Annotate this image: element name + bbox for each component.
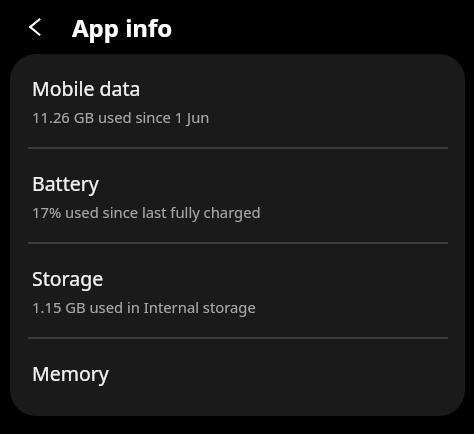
staticText: Battery xyxy=(32,170,99,197)
staticText: Storage xyxy=(32,265,104,292)
staticText: 1.15 GB used in Internal storage xyxy=(32,297,256,317)
button[interactable]: Memory xyxy=(10,339,465,416)
staticText: Memory xyxy=(32,360,109,387)
staticText: 11.26 GB used since 1 Jun xyxy=(32,107,210,127)
button[interactable]: Navigate up xyxy=(20,10,54,44)
staticText: App info xyxy=(72,11,173,44)
button[interactable]: Battery xyxy=(10,149,465,242)
staticText: 17% used since last fully charged xyxy=(32,202,261,222)
button[interactable]: Mobile data xyxy=(10,54,465,147)
button[interactable]: Storage xyxy=(10,244,465,337)
staticText: Mobile data xyxy=(32,75,141,102)
